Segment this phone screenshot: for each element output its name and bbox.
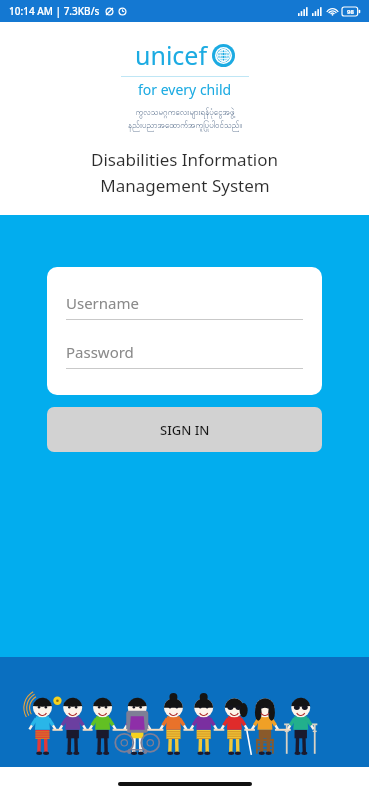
staticText: 98 (347, 8, 354, 16)
staticText: Management System (100, 174, 270, 197)
staticText: နည်းပညာအထောက်အကူပြုပါဝင်သည်။ (128, 120, 242, 132)
staticText: for every child (138, 80, 232, 99)
staticText: Disabilities Information (91, 148, 278, 171)
button[interactable]: Username (66, 293, 303, 320)
staticText: 10:14 AM | 7.3KB/s (9, 4, 100, 18)
staticText: ကွလသမဂ္ဂကလေးများရန်ပုံငွေအဖွဲ့ (135, 107, 235, 119)
staticText: Password (66, 342, 134, 362)
staticText: Username (66, 293, 139, 313)
button[interactable]: Password (66, 342, 303, 369)
staticText: SIGN IN (160, 421, 210, 439)
staticText: unicef (135, 38, 208, 72)
button[interactable]: SIGN IN (47, 407, 322, 452)
